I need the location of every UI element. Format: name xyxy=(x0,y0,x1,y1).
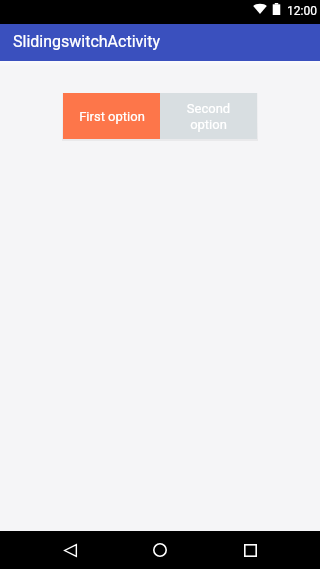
staticText: First option xyxy=(79,109,145,124)
button[interactable]: First option xyxy=(63,93,160,139)
button[interactable]: Recents xyxy=(228,531,272,569)
button[interactable]: Back xyxy=(48,531,92,569)
button[interactable]: Second option xyxy=(160,93,257,139)
button[interactable]: Home xyxy=(138,531,182,569)
staticText: Second option xyxy=(172,101,245,132)
staticText: SlidingswitchActivity xyxy=(13,32,160,51)
staticText: 12:00 xyxy=(287,4,317,18)
